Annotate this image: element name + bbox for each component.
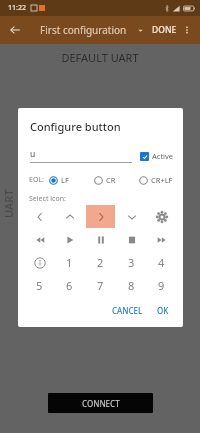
button[interactable]: 4 — [147, 251, 176, 274]
button[interactable]: 1 — [55, 251, 84, 274]
button[interactable]: Fast forward — [147, 228, 176, 251]
staticText: CR+LF — [151, 175, 173, 185]
staticText: u — [30, 148, 36, 160]
button[interactable]: Settings — [147, 205, 176, 228]
button[interactable]: 2 — [86, 251, 115, 274]
button[interactable]: Up — [55, 205, 84, 228]
button[interactable]: OK — [153, 302, 173, 319]
button[interactable]: Back — [4, 19, 26, 41]
button[interactable]: Previous item — [25, 205, 54, 228]
staticText: CANCEL — [112, 305, 143, 316]
staticText: Active — [152, 151, 174, 161]
staticText: DEFAULT UART — [0, 50, 200, 65]
button[interactable]: Pause — [86, 228, 115, 251]
staticText: UART — [1, 189, 16, 218]
staticText: 1 — [66, 255, 73, 270]
button[interactable]: DONE — [149, 20, 180, 40]
button[interactable]: Next item — [86, 205, 115, 228]
button[interactable]: Info — [25, 251, 54, 274]
button[interactable]: 8 — [117, 274, 146, 297]
button[interactable]: 3 — [117, 251, 146, 274]
button[interactable]: 6 — [55, 274, 84, 297]
staticText: 6 — [66, 278, 73, 293]
staticText: 3 — [128, 255, 135, 270]
button[interactable]: CR — [94, 175, 116, 185]
staticText: 9 — [158, 278, 165, 293]
button[interactable]: CR+LF — [139, 175, 173, 185]
button[interactable]: Rewind — [25, 228, 54, 251]
staticText: CONNECT — [82, 398, 120, 409]
staticText: CR — [106, 175, 116, 185]
staticText: Configure button — [30, 119, 121, 134]
button[interactable]: CANCEL — [108, 302, 147, 319]
staticText: OK — [157, 305, 169, 316]
staticText: 8 — [128, 278, 135, 293]
button[interactable]: 5 — [25, 274, 54, 297]
staticText: 11:22 — [8, 3, 26, 13]
staticText: EOL: — [29, 175, 44, 185]
button[interactable]: Active — [140, 151, 174, 161]
button[interactable]: Play — [55, 228, 84, 251]
staticText: 2 — [97, 255, 104, 270]
button[interactable]: First configuration — [40, 19, 144, 41]
staticText: Select icon: — [29, 194, 66, 204]
button[interactable]: LF — [49, 175, 69, 185]
staticText: 5 — [36, 278, 43, 293]
button[interactable]: More options — [178, 21, 196, 39]
staticText: LF — [61, 175, 69, 185]
button[interactable]: 7 — [86, 274, 115, 297]
staticText: 7 — [97, 278, 104, 293]
button[interactable]: 9 — [147, 274, 176, 297]
button[interactable]: Stop — [117, 228, 146, 251]
staticText: First configuration — [40, 23, 127, 37]
staticText: DONE — [152, 24, 177, 36]
button[interactable]: Down — [117, 205, 146, 228]
button[interactable]: CONNECT — [48, 393, 153, 413]
staticText: 4 — [158, 255, 165, 270]
